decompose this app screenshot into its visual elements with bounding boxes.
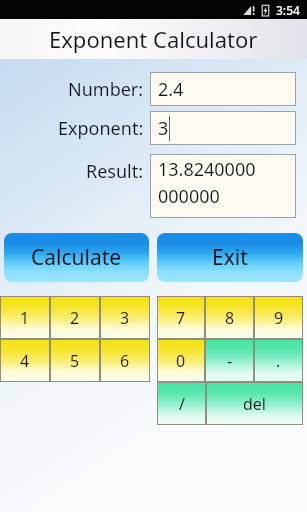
staticText: Number: xyxy=(68,77,144,102)
button[interactable]: 1 xyxy=(0,296,50,339)
staticText: del xyxy=(243,393,266,415)
staticText: 4 xyxy=(20,350,30,372)
button[interactable]: del xyxy=(206,382,303,425)
button[interactable]: 6 xyxy=(100,339,150,382)
button[interactable]: 7 xyxy=(157,296,205,339)
button[interactable]: 4 xyxy=(0,339,50,382)
staticText: Calculate xyxy=(31,243,122,272)
staticText: 8 xyxy=(225,307,235,329)
staticText: 7 xyxy=(176,307,186,329)
staticText: 0 xyxy=(176,350,186,372)
staticText: 2.4 xyxy=(158,77,184,102)
button[interactable]: 9 xyxy=(254,296,303,339)
button[interactable]: - xyxy=(205,339,254,382)
staticText: 9 xyxy=(274,307,284,329)
button[interactable]: 8 xyxy=(205,296,254,339)
button[interactable]: . xyxy=(254,339,303,382)
staticText: Exponent Calculator xyxy=(49,24,258,54)
staticText: 3 xyxy=(158,116,169,141)
staticText: 5 xyxy=(70,350,80,372)
button[interactable]: Calculate xyxy=(4,233,149,282)
button[interactable]: 0 xyxy=(157,339,205,382)
staticText: Result: xyxy=(86,159,144,184)
button[interactable]: 2 xyxy=(50,296,100,339)
button[interactable]: 5 xyxy=(50,339,100,382)
staticText: 3:54 xyxy=(276,2,300,18)
button[interactable]: / xyxy=(157,382,206,425)
staticText: - xyxy=(227,350,233,372)
staticText: 3 xyxy=(120,307,130,329)
staticText: 13.8240000 xyxy=(158,157,256,182)
staticText: Exponent: xyxy=(58,116,144,141)
staticText: 2 xyxy=(70,307,80,329)
button[interactable]: Exit xyxy=(157,233,303,282)
staticText: 000000 xyxy=(158,184,220,209)
staticText: 1 xyxy=(20,307,30,329)
staticText: . xyxy=(276,350,281,372)
staticText: Exit xyxy=(212,243,248,272)
staticText: 6 xyxy=(120,350,130,372)
button[interactable]: 3 xyxy=(100,296,150,339)
staticText: / xyxy=(179,393,185,415)
